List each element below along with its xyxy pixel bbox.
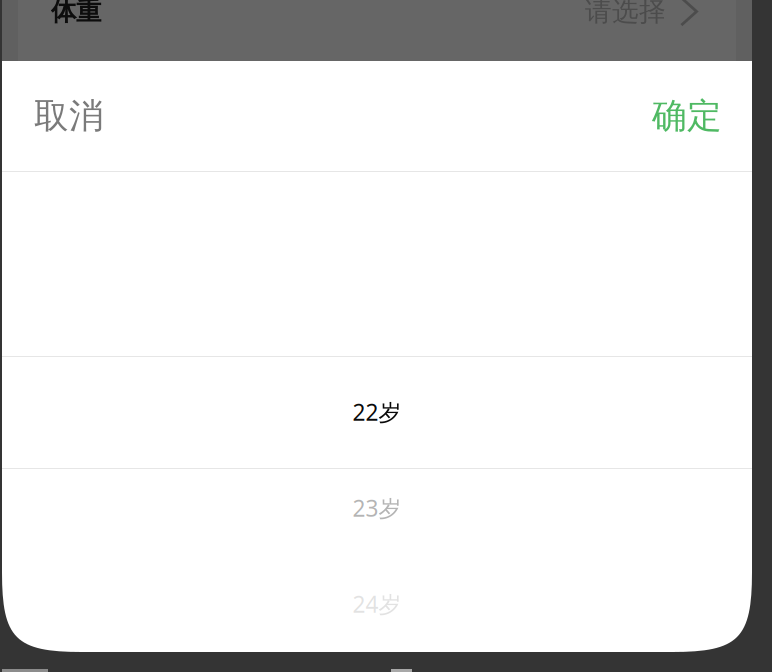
staticText: 取消	[34, 95, 104, 137]
staticText: 22岁	[352, 397, 401, 427]
staticText: 23岁	[352, 493, 401, 523]
staticText: 体重	[51, 0, 101, 27]
button[interactable]: 取消	[2, 61, 136, 171]
button[interactable]: 体重	[18, 0, 736, 61]
staticText: 请选择	[585, 0, 666, 28]
button[interactable]: 22岁	[2, 172, 752, 460]
button[interactable]: 确定	[620, 61, 752, 171]
button[interactable]: 24岁	[2, 556, 752, 652]
staticText: 确定	[652, 95, 722, 137]
staticText: 24岁	[352, 589, 401, 619]
button[interactable]: 23岁	[2, 460, 752, 556]
